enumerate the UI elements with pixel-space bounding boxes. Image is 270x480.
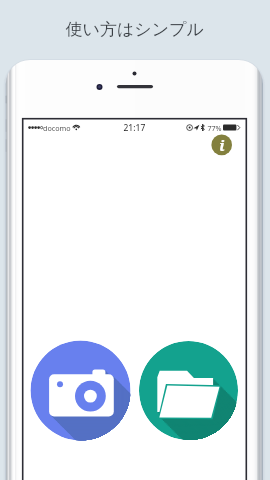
button[interactable]: Folder bbox=[139, 341, 238, 440]
button[interactable]: Info bbox=[211, 134, 233, 156]
button[interactable]: Camera bbox=[30, 340, 131, 441]
